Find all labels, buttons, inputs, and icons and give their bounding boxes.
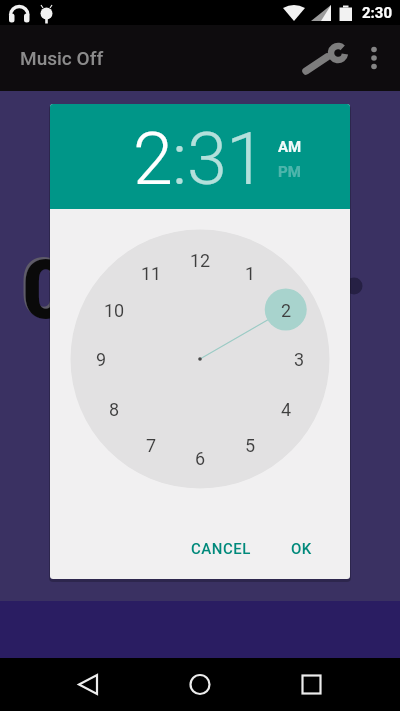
staticText: Music Off	[20, 47, 104, 69]
staticText: 9	[96, 349, 107, 370]
staticText: 1	[245, 263, 256, 284]
staticText: 2	[281, 300, 292, 321]
staticText: 7	[146, 435, 157, 456]
staticText: CANCEL	[191, 540, 251, 558]
staticText: 0	[20, 240, 68, 336]
button[interactable]: AM	[278, 138, 302, 156]
button[interactable]: 5	[234, 429, 266, 461]
staticText: 3	[294, 349, 305, 370]
button[interactable]: 31	[187, 117, 265, 201]
button[interactable]: 3	[283, 343, 315, 375]
button[interactable]	[300, 34, 348, 82]
staticText: 8	[109, 399, 120, 420]
staticText: 2:30	[362, 4, 393, 22]
staticText: 5	[245, 435, 256, 456]
staticText: 0	[22, 242, 70, 338]
button[interactable]: 2	[270, 294, 302, 326]
button[interactable]: OK	[291, 540, 312, 558]
button[interactable]: 8	[98, 393, 130, 425]
button[interactable]: CANCEL	[191, 540, 251, 558]
button[interactable]: PM	[278, 163, 301, 181]
staticText: 10	[104, 300, 125, 321]
button[interactable]: 9	[85, 343, 117, 375]
button[interactable]: 12	[184, 244, 216, 276]
staticText: OK	[291, 540, 312, 558]
staticText: 12	[190, 250, 211, 271]
button[interactable]: 10	[98, 294, 130, 326]
button[interactable]: 6	[184, 442, 216, 474]
button[interactable]: 7	[135, 429, 167, 461]
staticText: 4	[281, 399, 292, 420]
button[interactable]: 1	[234, 257, 266, 289]
button[interactable]: 4	[270, 393, 302, 425]
staticText: :	[172, 117, 187, 201]
staticText: 6	[195, 448, 206, 469]
button[interactable]: 2	[133, 117, 172, 201]
button[interactable]: 11	[135, 257, 167, 289]
button[interactable]	[362, 46, 386, 70]
staticText: 11	[141, 263, 162, 284]
